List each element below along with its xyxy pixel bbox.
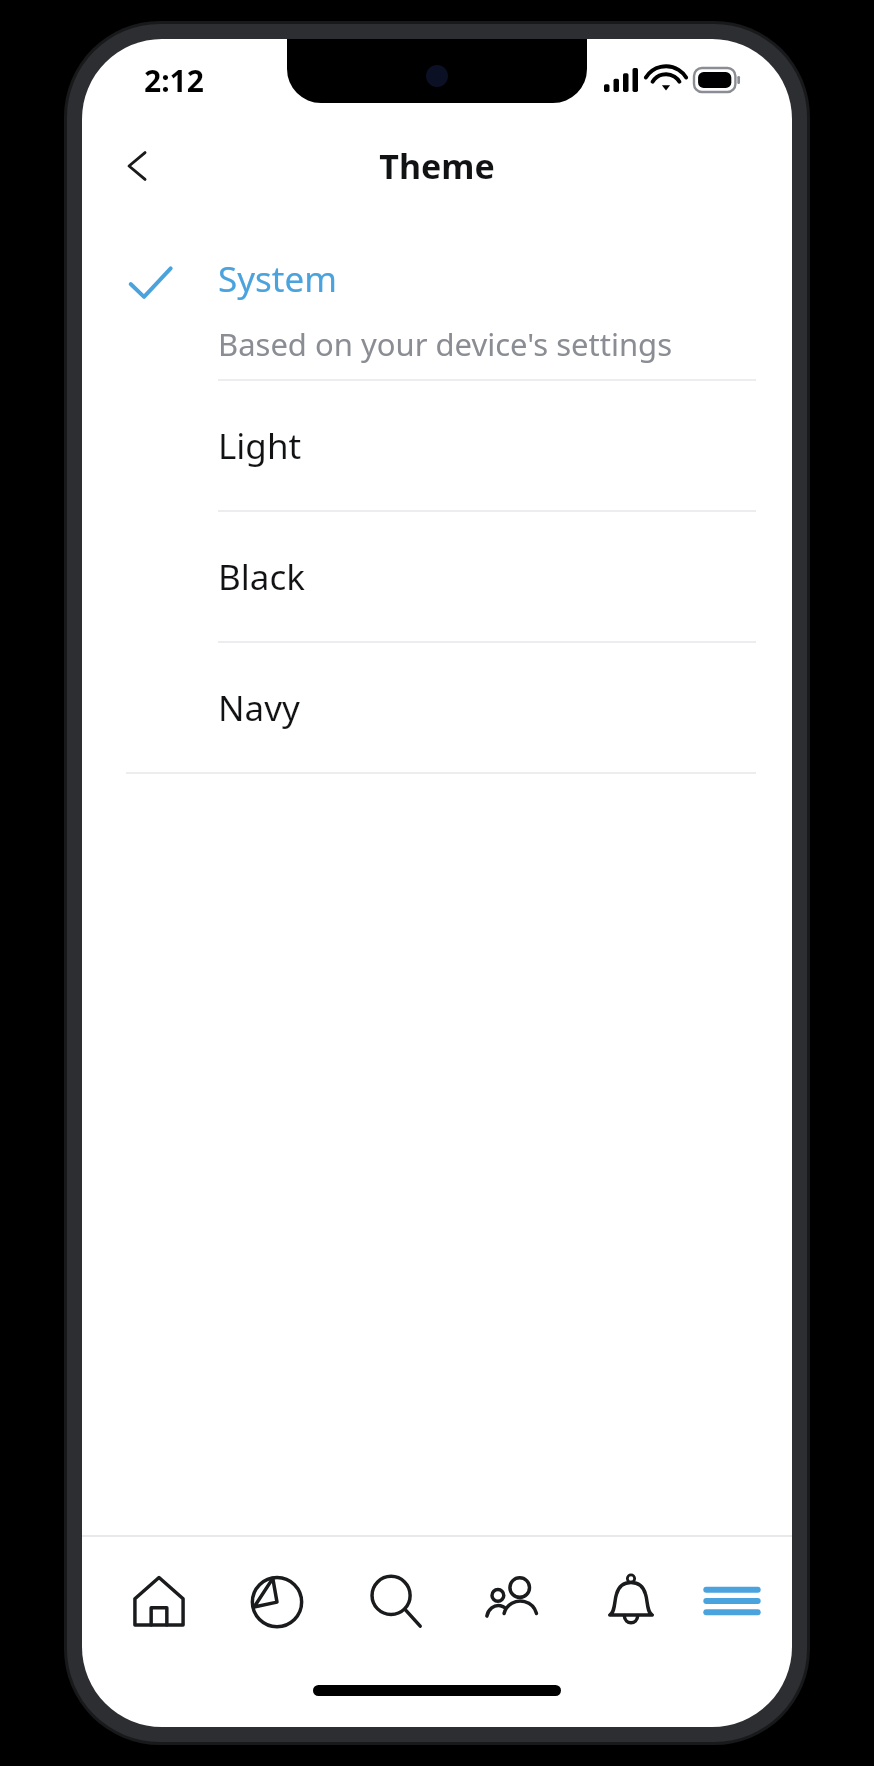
button[interactable]: Home [100, 1542, 218, 1660]
button[interactable]: Notifications [572, 1542, 690, 1660]
staticText: System [218, 255, 337, 303]
staticText: Light [218, 422, 302, 470]
button[interactable]: Black [82, 512, 792, 641]
button[interactable]: Reports [218, 1542, 336, 1660]
button[interactable]: Back [102, 130, 174, 202]
button[interactable]: System [82, 219, 792, 379]
staticText: Based on your device's settings [218, 323, 673, 365]
button[interactable]: Light [82, 381, 792, 510]
staticText: Navy [218, 684, 300, 732]
staticText: 2:12 [144, 60, 204, 101]
button[interactable]: People [454, 1542, 572, 1660]
button[interactable]: Navy [82, 643, 792, 772]
staticText: Theme [379, 143, 495, 189]
button[interactable]: Menu [690, 1542, 774, 1660]
staticText: Black [218, 553, 305, 601]
button[interactable]: Search [336, 1542, 454, 1660]
